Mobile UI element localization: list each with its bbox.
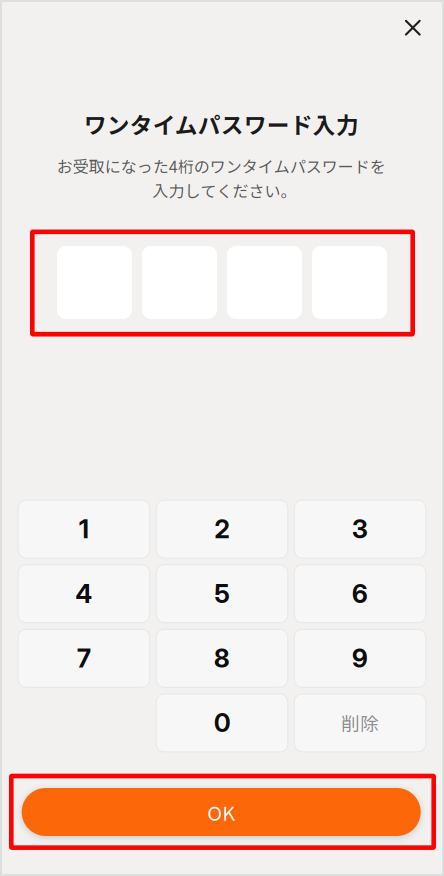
staticText: 5 <box>214 578 229 609</box>
staticText: お受取になった4桁のワンタイムパスワードを <box>57 154 386 177</box>
staticText: 2 <box>214 514 229 544</box>
staticText: 6 <box>352 578 368 609</box>
staticText: 9 <box>352 643 368 674</box>
button[interactable]: 4 <box>18 565 150 623</box>
button[interactable]: 閉じる <box>391 6 435 50</box>
button[interactable]: 1 <box>18 500 150 558</box>
staticText: 3 <box>352 514 368 544</box>
staticText: ワンタイムパスワード入力 <box>84 107 359 140</box>
staticText: OK <box>207 797 235 826</box>
staticText: 入力してください。 <box>152 179 296 202</box>
button[interactable]: 0 <box>156 694 288 752</box>
staticText: 0 <box>214 708 230 738</box>
button[interactable]: 削除 <box>294 694 426 752</box>
button[interactable]: 3 <box>294 500 426 558</box>
staticText: 1 <box>79 514 89 544</box>
staticText: 8 <box>214 643 230 674</box>
staticText: 7 <box>77 643 91 674</box>
button[interactable]: 5 <box>156 565 288 623</box>
staticText: 削除 <box>341 709 379 736</box>
button[interactable]: OK <box>22 788 421 836</box>
staticText: 4 <box>75 578 92 609</box>
button[interactable]: 7 <box>18 629 150 687</box>
button[interactable]: 2 <box>156 500 288 558</box>
button[interactable]: 8 <box>156 629 288 687</box>
button[interactable]: 9 <box>294 629 426 687</box>
button[interactable]: 6 <box>294 565 426 623</box>
